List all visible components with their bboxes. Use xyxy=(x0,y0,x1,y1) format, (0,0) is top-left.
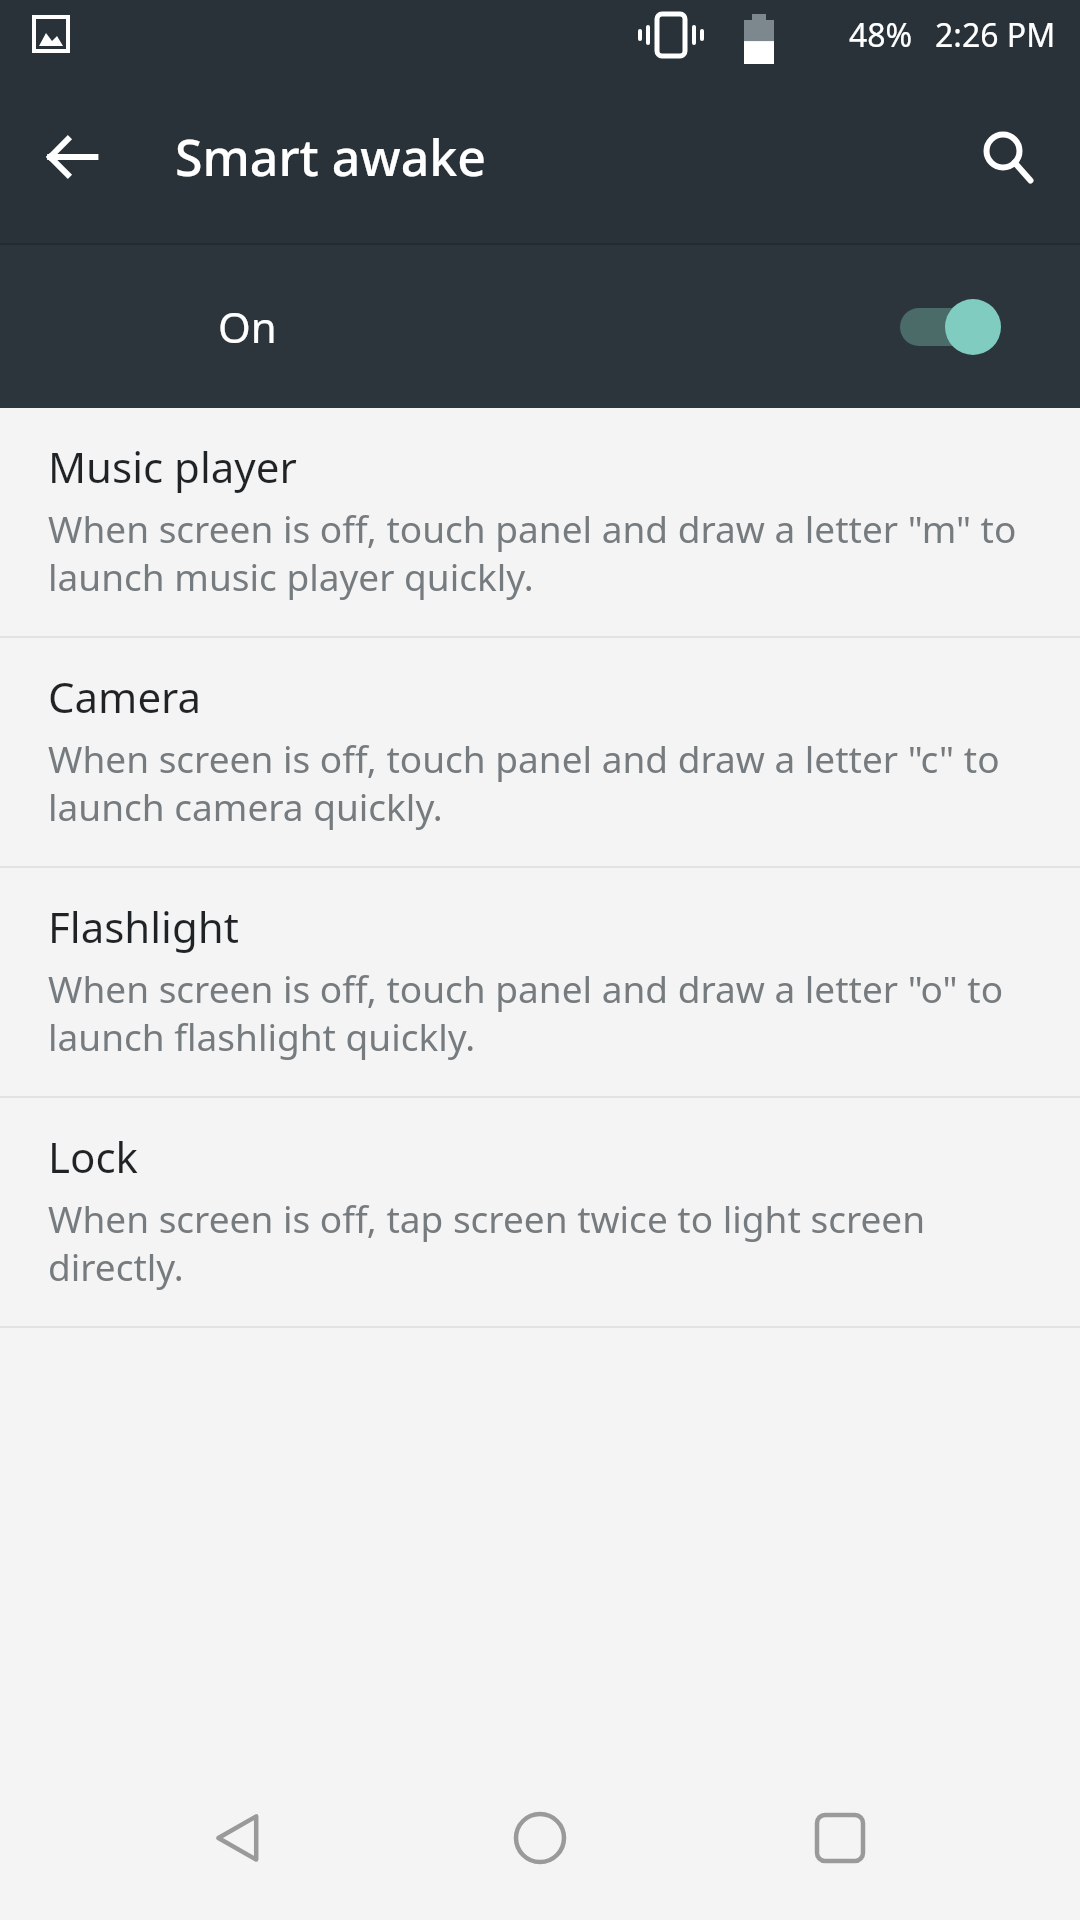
button[interactable]: On xyxy=(0,245,1080,408)
button[interactable]: Camera xyxy=(0,638,1080,866)
staticText: Flashlight xyxy=(48,898,239,955)
button[interactable]: Flashlight xyxy=(0,868,1080,1096)
button[interactable]: Music player xyxy=(0,408,1080,636)
staticText: When screen is off, tap screen twice to … xyxy=(48,1193,1032,1292)
staticText: Lock xyxy=(48,1128,139,1185)
button[interactable]: Lock xyxy=(0,1098,1080,1326)
button[interactable]: Back xyxy=(24,109,120,205)
staticText: Music player xyxy=(48,438,297,495)
button[interactable]: Search xyxy=(960,109,1056,205)
staticText: On xyxy=(218,298,277,355)
staticText: When screen is off, touch panel and draw… xyxy=(48,963,1032,1062)
staticText: When screen is off, touch panel and draw… xyxy=(48,733,1032,832)
staticText: When screen is off, touch panel and draw… xyxy=(48,503,1032,602)
staticText: Camera xyxy=(48,668,202,725)
button[interactable]: Back xyxy=(180,1778,300,1898)
button[interactable]: Recent apps xyxy=(780,1778,900,1898)
staticText: 48% xyxy=(849,13,913,57)
button[interactable]: Home xyxy=(480,1778,600,1898)
staticText: Smart awake xyxy=(175,123,486,191)
staticText: 2:26 PM xyxy=(935,13,1056,57)
